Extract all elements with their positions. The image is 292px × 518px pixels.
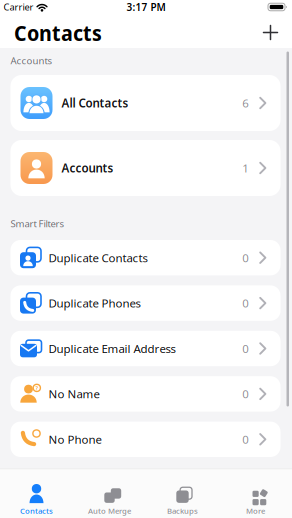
button[interactable]: More bbox=[219, 484, 292, 516]
staticText: No Phone bbox=[48, 432, 101, 447]
staticText: 6 bbox=[242, 95, 249, 111]
staticText: Backups bbox=[167, 506, 198, 516]
button[interactable]: Contacts bbox=[0, 484, 73, 516]
button[interactable]: Duplicate Contacts bbox=[10, 240, 280, 275]
button[interactable]: All Contacts bbox=[10, 75, 280, 131]
staticText: 1 bbox=[242, 160, 249, 176]
staticText: No Name bbox=[48, 386, 99, 401]
staticText: 0 bbox=[242, 341, 249, 356]
staticText: Duplicate Phones bbox=[48, 295, 140, 311]
staticText: Accounts bbox=[10, 54, 52, 67]
button[interactable]: Auto Merge bbox=[73, 484, 146, 516]
button[interactable]: Backups bbox=[146, 484, 219, 516]
staticText: ? bbox=[35, 385, 38, 392]
staticText: Contacts bbox=[20, 506, 53, 516]
staticText: Duplicate Email Address bbox=[48, 341, 175, 356]
staticText: 3:17 PM bbox=[126, 0, 165, 14]
staticText: Contacts bbox=[14, 18, 102, 47]
staticText: Auto Merge bbox=[88, 506, 131, 516]
staticText: Smart Filters bbox=[10, 217, 64, 230]
button[interactable]: Accounts bbox=[10, 140, 280, 196]
button[interactable]: Duplicate Phones bbox=[10, 285, 280, 321]
staticText: 0 bbox=[242, 295, 249, 311]
staticText: 0 bbox=[242, 386, 249, 401]
staticText: All Contacts bbox=[61, 95, 128, 111]
staticText: Duplicate Contacts bbox=[48, 250, 147, 265]
staticText: Accounts bbox=[61, 160, 113, 176]
staticText: 0 bbox=[242, 432, 249, 447]
button[interactable]: No Phone bbox=[10, 422, 280, 457]
staticText: 0 bbox=[242, 250, 249, 265]
button[interactable]: ? bbox=[10, 376, 280, 412]
staticText: Carrier bbox=[3, 1, 33, 13]
staticText: More bbox=[246, 506, 265, 516]
button[interactable]: Add Contact bbox=[263, 25, 292, 39]
button[interactable]: Duplicate Email Address bbox=[10, 331, 280, 366]
